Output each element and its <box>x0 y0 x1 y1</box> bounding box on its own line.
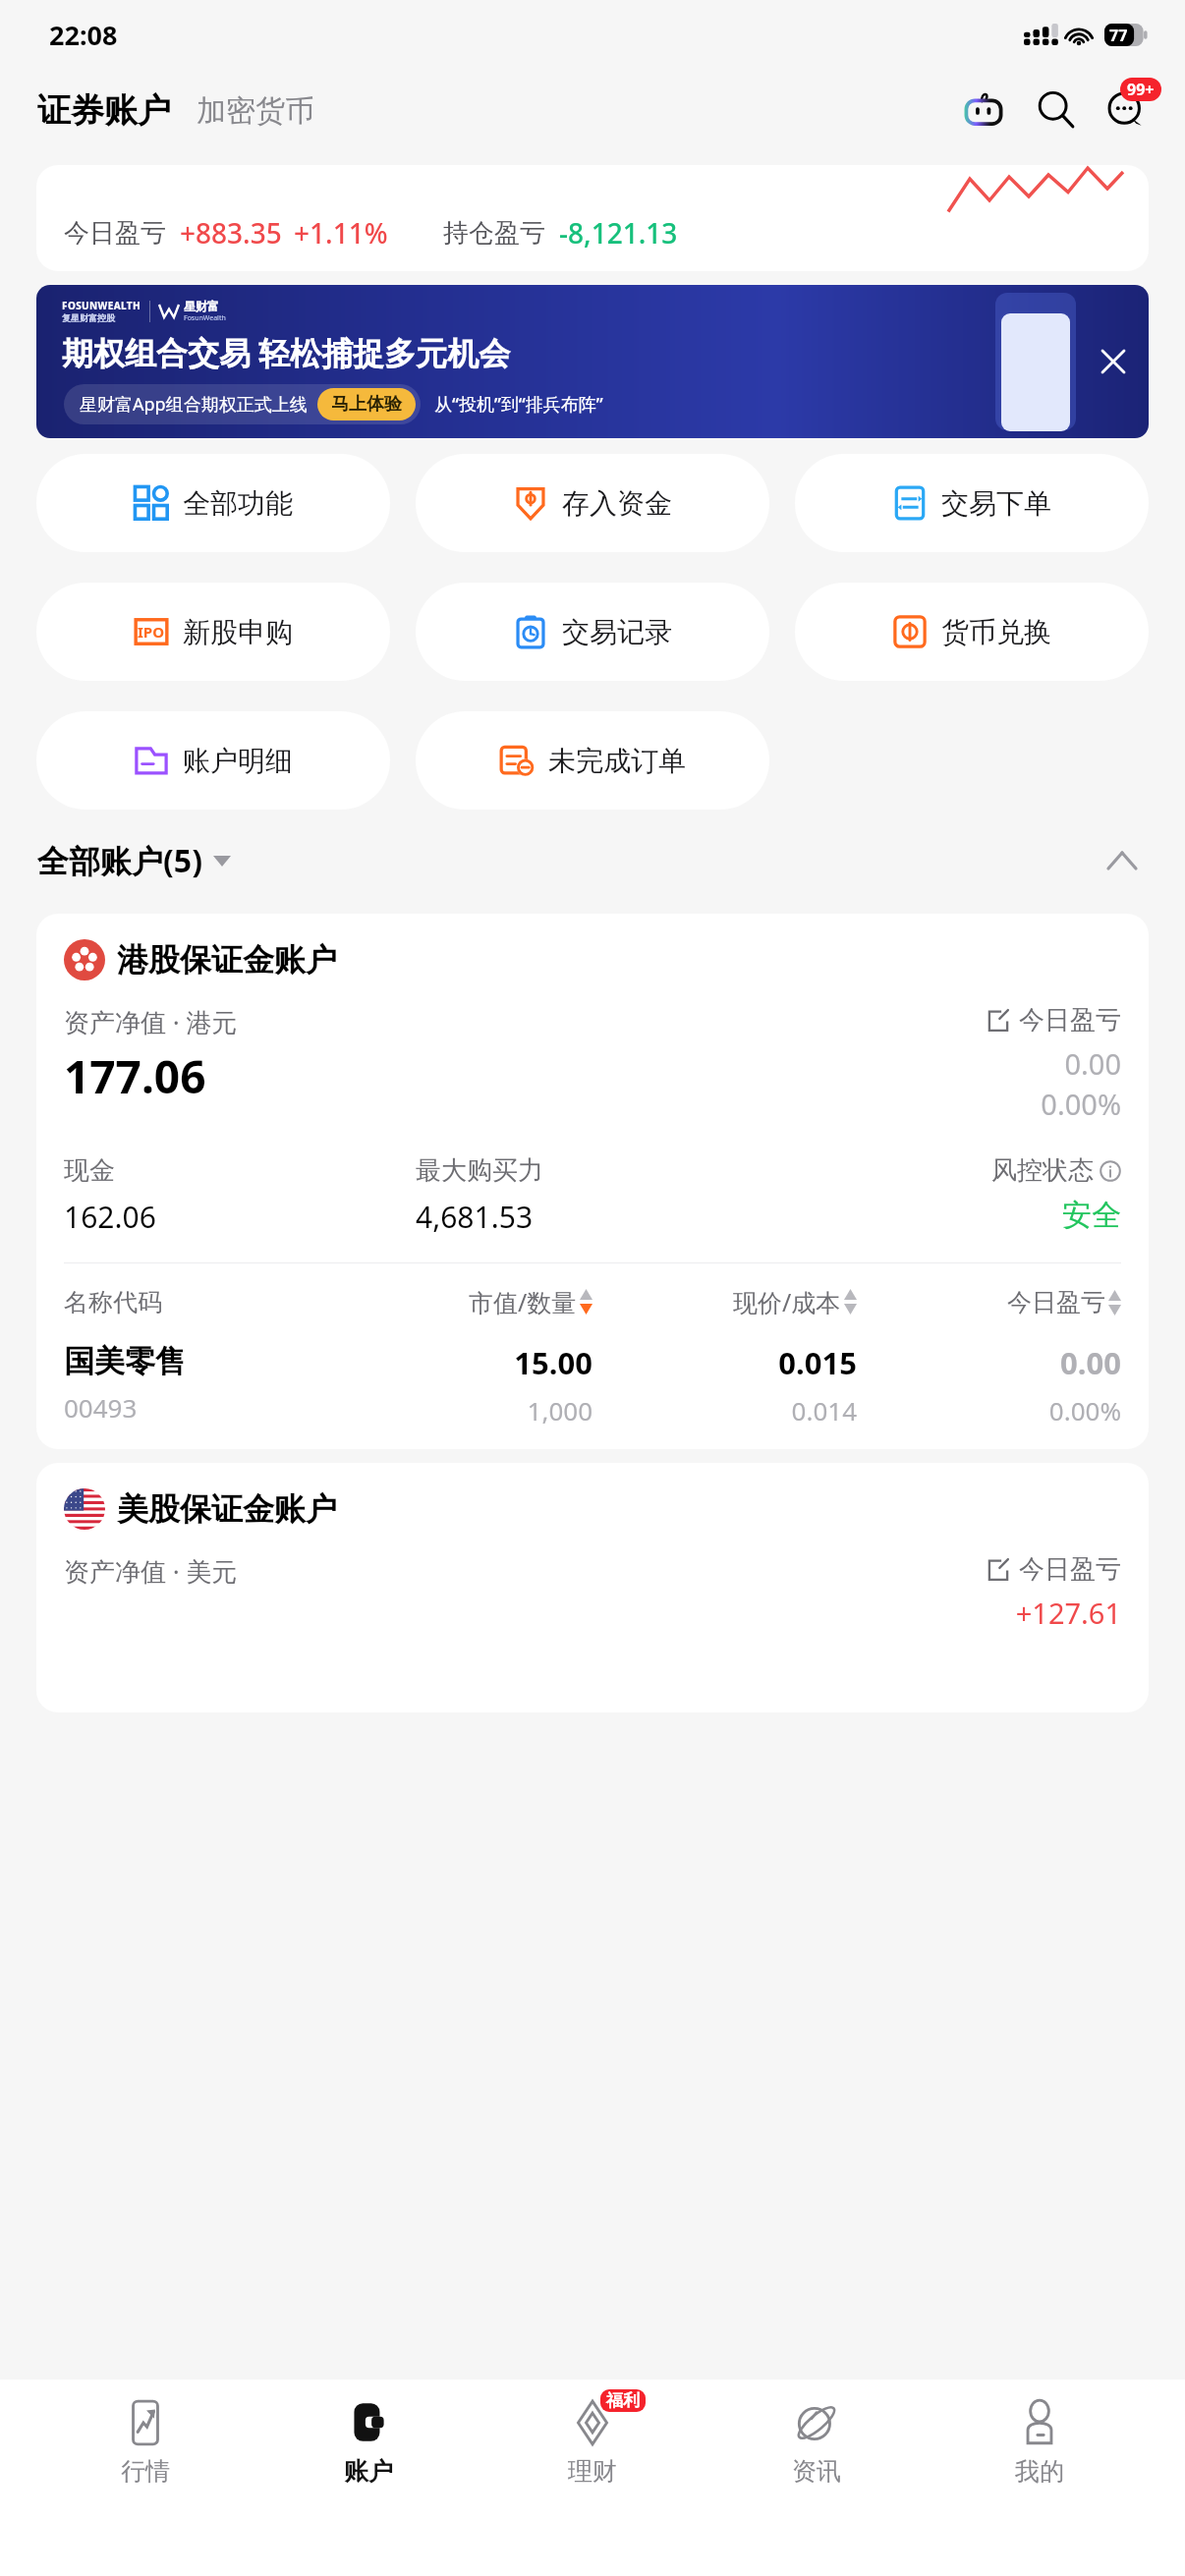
staticText: 现金 <box>64 1154 115 1187</box>
staticText: 4,681.53 <box>416 1197 534 1237</box>
staticText: 名称代码 <box>64 1287 328 1317</box>
staticText: 99+ <box>1127 79 1155 100</box>
staticText: 资产净值 · 港元 <box>64 1004 238 1039</box>
staticText: 15.00 <box>514 1342 592 1383</box>
button[interactable]: 货币兑换 <box>795 583 1149 681</box>
staticText: 今日盈亏 <box>1019 1004 1121 1036</box>
staticText: 未完成订单 <box>548 744 686 778</box>
staticText: 货币兑换 <box>941 615 1051 649</box>
button[interactable]: 证券账户 <box>37 89 171 132</box>
staticText: 最大购买力 <box>416 1154 543 1187</box>
staticText: 00493 <box>64 1390 138 1425</box>
button[interactable]: 行情 <box>67 2393 224 2491</box>
staticText: 今日盈亏 <box>64 217 166 250</box>
staticText: 全部账户(5) <box>37 839 203 882</box>
button[interactable]: 交易下单 <box>795 454 1149 552</box>
staticText: 0.00% <box>1048 1393 1121 1428</box>
button[interactable]: IPO <box>36 583 390 681</box>
staticText: 市值/数量 <box>469 1285 577 1318</box>
button[interactable]: 全部账户(5) <box>37 839 231 882</box>
button[interactable]: 账户明细 <box>36 711 390 810</box>
staticText: 162.06 <box>64 1197 156 1237</box>
staticText: FOSUNWEALTH <box>62 299 141 312</box>
staticText: 风控状态 <box>991 1154 1094 1187</box>
staticText: 0.00% <box>1041 1085 1121 1123</box>
button[interactable]: 资讯 <box>738 2393 895 2491</box>
staticText: 今日盈亏 <box>1019 1553 1121 1586</box>
button[interactable]: 未完成订单 <box>416 711 769 810</box>
button[interactable]: AI assistant <box>955 82 1012 139</box>
staticText: 国美零售 <box>64 1342 186 1380</box>
button[interactable]: 福利 <box>514 2393 671 2491</box>
staticText: 全部功能 <box>183 486 293 521</box>
staticText: 持仓盈亏 <box>443 217 545 250</box>
staticText: 资产净值 · 美元 <box>64 1553 238 1589</box>
staticText: 新股申购 <box>183 615 293 649</box>
staticText: 存入资金 <box>562 486 672 521</box>
button[interactable]: 今日盈亏 <box>36 165 1149 271</box>
staticText: FosunWealth <box>184 313 226 323</box>
button[interactable]: 全部功能 <box>36 454 390 552</box>
staticText: 资讯 <box>792 2456 841 2487</box>
button[interactable]: 市值/数量 <box>328 1285 592 1318</box>
button[interactable]: Collapse accounts <box>1097 835 1148 886</box>
staticText: 账户 <box>344 2456 393 2487</box>
staticText: 177.06 <box>64 1045 206 1107</box>
button[interactable]: 美股保证金账户 <box>36 1463 1149 1712</box>
button[interactable]: 国美零售 <box>64 1342 1121 1428</box>
button[interactable]: 我的 <box>961 2393 1118 2491</box>
button[interactable]: Close ad <box>1092 340 1135 383</box>
staticText: -8,121.13 <box>559 214 678 252</box>
button[interactable]: 港股保证金账户 <box>36 914 1149 1449</box>
staticText: 港股保证金账户 <box>117 940 337 980</box>
staticText: 0.015 <box>778 1342 857 1383</box>
staticText: +883.35 <box>180 214 282 252</box>
staticText: 星财富App组合期权正式上线 <box>80 392 308 417</box>
staticText: 证券账户 <box>37 89 171 132</box>
staticText: 行情 <box>121 2456 170 2487</box>
button[interactable]: 今日盈亏 <box>857 1287 1121 1317</box>
staticText: 77 <box>1109 25 1128 46</box>
staticText: 安全 <box>1062 1197 1121 1234</box>
staticText: IPO <box>138 622 165 642</box>
button[interactable]: Search <box>1028 82 1085 139</box>
staticText: 今日盈亏 <box>1007 1287 1105 1317</box>
staticText: 1,000 <box>527 1393 592 1428</box>
button[interactable]: FOSUNWEALTH <box>36 285 1149 438</box>
staticText: 22:08 <box>49 17 118 53</box>
staticText: 交易下单 <box>941 486 1051 521</box>
staticText: +127.61 <box>1015 1594 1121 1632</box>
staticText: 期权组合交易 轻松捕捉多元机会 <box>62 331 511 374</box>
button[interactable]: 存入资金 <box>416 454 769 552</box>
staticText: 现价/成本 <box>733 1285 841 1318</box>
button[interactable]: 现价/成本 <box>592 1285 857 1318</box>
button[interactable]: 交易记录 <box>416 583 769 681</box>
staticText: 美股保证金账户 <box>117 1489 337 1529</box>
staticText: 账户明细 <box>183 744 293 778</box>
staticText: 复星财富控股 <box>62 312 115 323</box>
staticText: 加密货币 <box>197 92 314 130</box>
staticText: 我的 <box>1015 2456 1064 2487</box>
staticText: +1.11% <box>294 214 388 252</box>
button[interactable]: Messages, 99 plus unread <box>1095 78 1159 142</box>
button[interactable]: 账户 <box>290 2393 447 2491</box>
staticText: 理财 <box>568 2456 617 2487</box>
staticText: 0.00 <box>1064 1044 1121 1083</box>
button[interactable]: 加密货币 <box>197 92 314 132</box>
staticText: 星财富 <box>184 299 219 313</box>
staticText: 0.00 <box>1060 1342 1121 1383</box>
staticText: 从“投机”到“排兵布阵” <box>434 392 603 417</box>
staticText: 马上体验 <box>331 393 402 416</box>
staticText: 0.014 <box>791 1393 857 1428</box>
staticText: 交易记录 <box>562 615 672 649</box>
staticText: 福利 <box>606 2390 640 2411</box>
